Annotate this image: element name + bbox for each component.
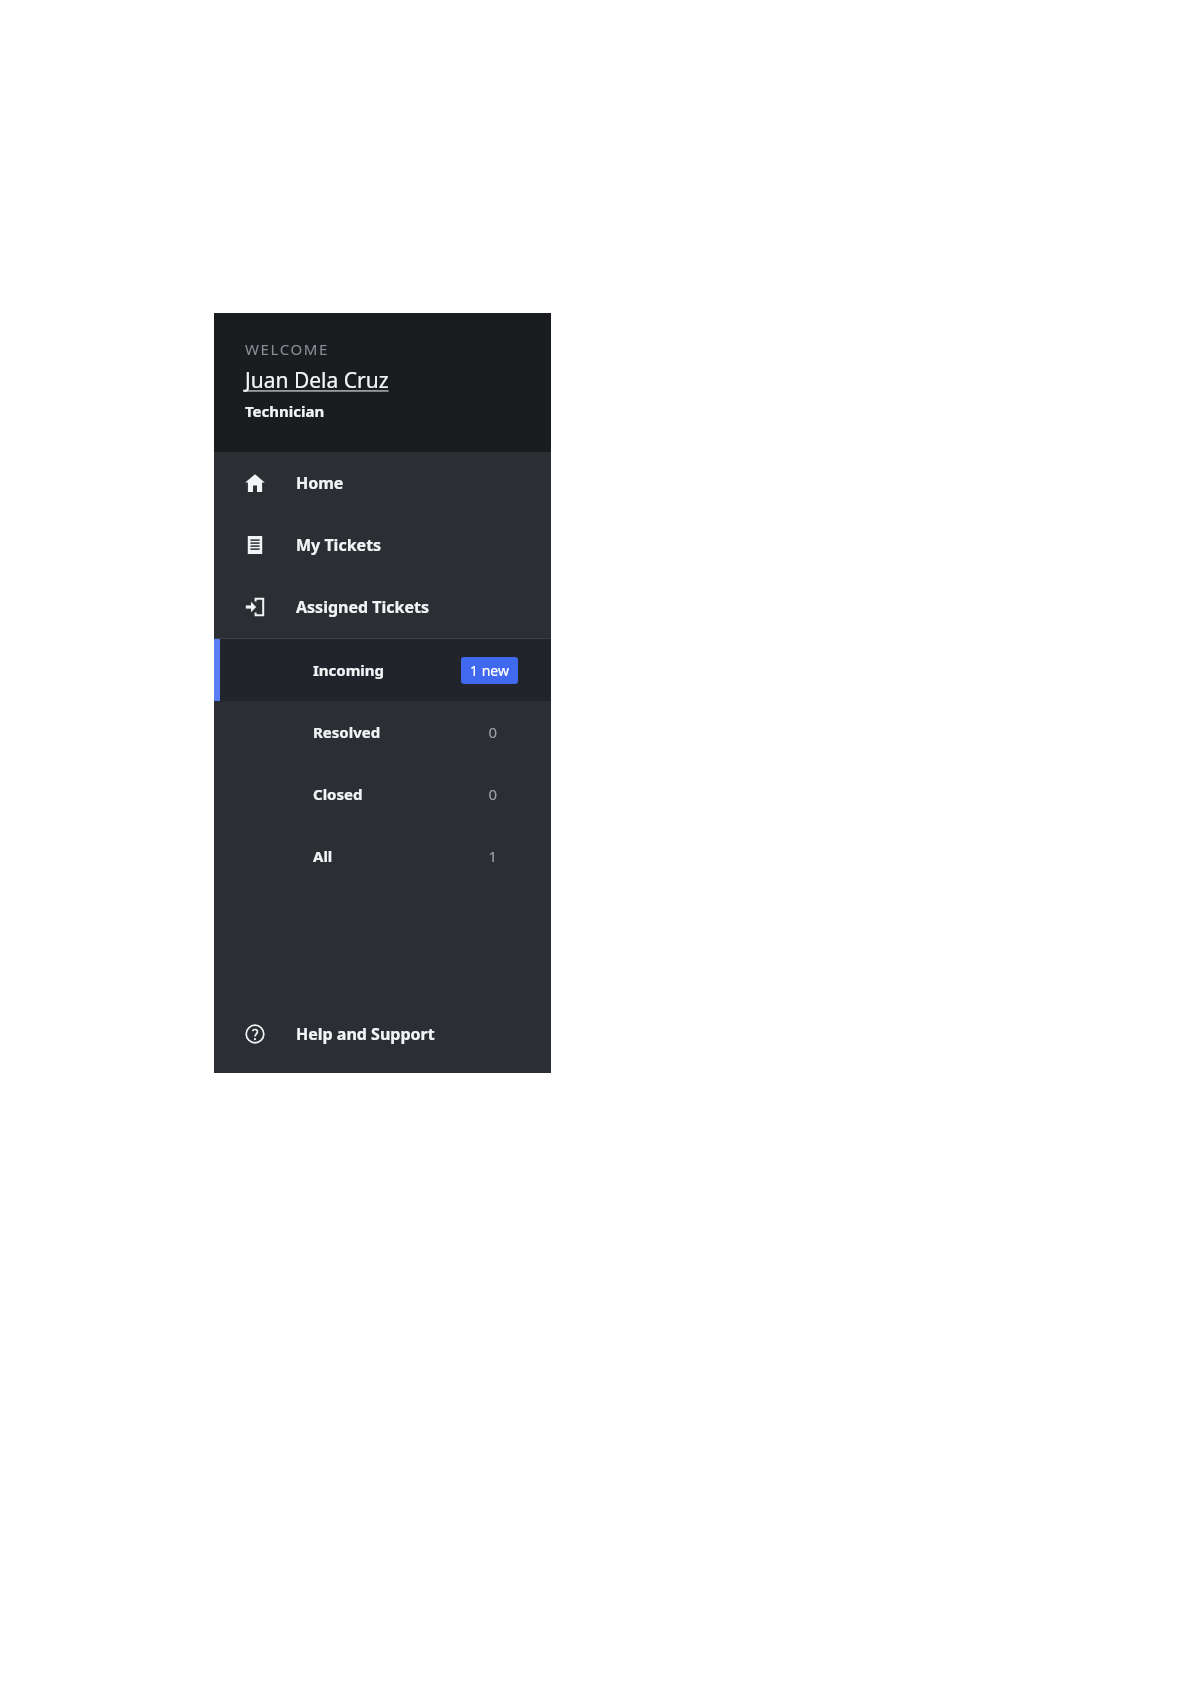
other: Assigned Tickets <box>245 597 265 617</box>
staticText: Technician <box>245 401 325 421</box>
button[interactable]: My Tickets <box>214 514 551 576</box>
staticText: 1 <box>488 846 497 866</box>
staticText: Juan Dela Cruz <box>245 366 389 395</box>
button[interactable]: All <box>214 825 551 887</box>
staticText: Help and Support <box>296 1023 435 1045</box>
button[interactable]: Assigned Tickets <box>214 576 551 638</box>
staticText: 0 <box>488 722 497 742</box>
staticText: Assigned Tickets <box>296 596 429 618</box>
other: My Tickets <box>245 535 265 555</box>
other: Home <box>245 473 265 493</box>
button[interactable]: Incoming <box>214 639 551 701</box>
button[interactable]: Juan Dela Cruz <box>245 366 389 395</box>
button[interactable]: Help and Support <box>214 1003 551 1065</box>
staticText: Incoming <box>313 660 385 680</box>
staticText: Closed <box>313 784 363 804</box>
staticText: WELCOME <box>245 339 329 359</box>
other: Help and Support <box>245 1024 265 1044</box>
staticText: Home <box>296 472 344 494</box>
staticText: My Tickets <box>296 534 382 556</box>
button[interactable]: Closed <box>214 763 551 825</box>
staticText: Resolved <box>313 722 381 742</box>
button[interactable]: Home <box>214 452 551 514</box>
staticText: 1 new <box>470 661 509 680</box>
staticText: 0 <box>488 784 497 804</box>
button[interactable]: Resolved <box>214 701 551 763</box>
staticText: All <box>313 846 333 866</box>
